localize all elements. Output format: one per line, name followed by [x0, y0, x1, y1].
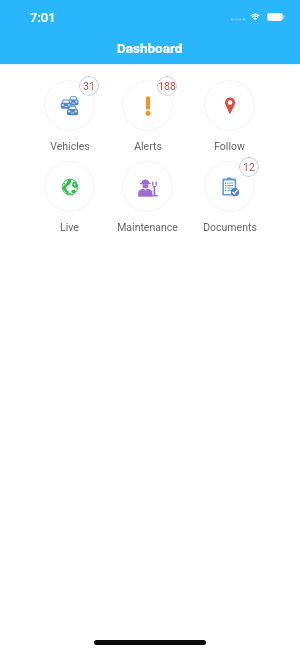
button[interactable]: Live: [29, 161, 110, 233]
staticText: Follow: [214, 140, 245, 152]
button[interactable]: Follow: [189, 80, 270, 152]
other: Follow: [220, 96, 240, 116]
staticText: 7:01: [30, 10, 56, 25]
button[interactable]: Alerts: [107, 80, 188, 152]
other: Live: [60, 177, 80, 197]
staticText: 12: [243, 161, 255, 173]
staticText: Maintenance: [117, 221, 178, 233]
staticText: 31: [83, 80, 95, 92]
button[interactable]: Documents: [189, 161, 270, 233]
staticText: Documents: [203, 221, 257, 233]
staticText: Dashboard: [117, 40, 183, 56]
staticText: Vehicles: [50, 140, 90, 152]
other: Vehicles: [60, 96, 80, 116]
staticText: Alerts: [134, 140, 162, 152]
other: Documents: [220, 177, 240, 197]
button[interactable]: Vehicles: [29, 80, 110, 152]
other: Alerts: [138, 96, 158, 116]
other: Maintenance: [138, 177, 158, 197]
staticText: Live: [60, 221, 79, 233]
button[interactable]: Maintenance: [107, 161, 188, 233]
staticText: 188: [158, 80, 176, 92]
